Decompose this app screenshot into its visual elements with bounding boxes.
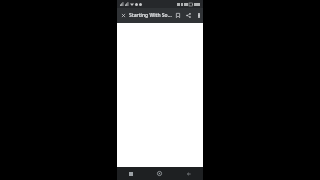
button[interactable]: Share (183, 8, 194, 23)
button[interactable]: Close (117, 8, 129, 23)
button[interactable]: More options (194, 8, 203, 23)
button[interactable]: Bookmark (172, 8, 183, 23)
button[interactable]: Starting With So… (129, 8, 172, 23)
button[interactable]: Home (145, 167, 174, 180)
button[interactable]: Back (174, 167, 203, 180)
staticText: Starting With So… (129, 12, 172, 19)
button[interactable]: Recents (117, 167, 145, 180)
